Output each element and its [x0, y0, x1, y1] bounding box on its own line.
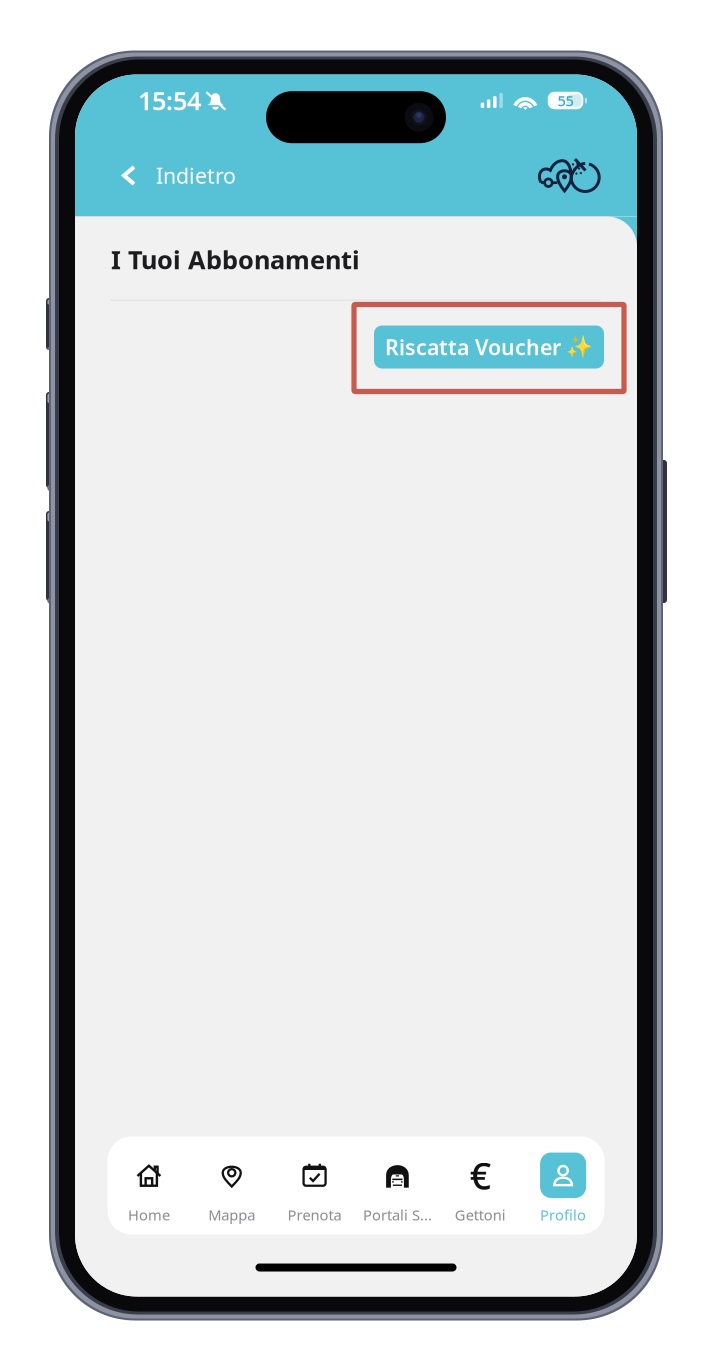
staticText: € — [470, 1150, 491, 1200]
button[interactable]: Mappa — [190, 1136, 273, 1234]
staticText: Home — [128, 1205, 170, 1224]
staticText: 15:54 — [138, 84, 201, 117]
staticText: ✨ — [566, 335, 593, 359]
staticText: Profilo — [540, 1205, 586, 1224]
button[interactable]: Indietro — [75, 149, 256, 202]
staticText: Mappa — [208, 1205, 255, 1224]
button[interactable]: Prenota — [273, 1136, 356, 1234]
staticText: 55 — [557, 91, 573, 110]
button[interactable]: Riscatta Voucher — [374, 325, 604, 368]
staticText: Gettoni — [455, 1205, 506, 1224]
button[interactable]: Profilo — [522, 1136, 604, 1234]
staticText: Prenota — [288, 1205, 342, 1224]
button[interactable]: Portali S... — [356, 1136, 439, 1234]
button[interactable]: Home — [107, 1136, 190, 1234]
staticText: I Tuoi Abbonamenti — [111, 242, 360, 276]
staticText: Indietro — [156, 161, 236, 190]
staticText: Riscatta Voucher — [385, 333, 561, 361]
button[interactable]: € — [439, 1136, 522, 1234]
button[interactable]: Apri mappa parcheggi — [521, 145, 637, 205]
staticText: Portali S... — [363, 1205, 432, 1224]
